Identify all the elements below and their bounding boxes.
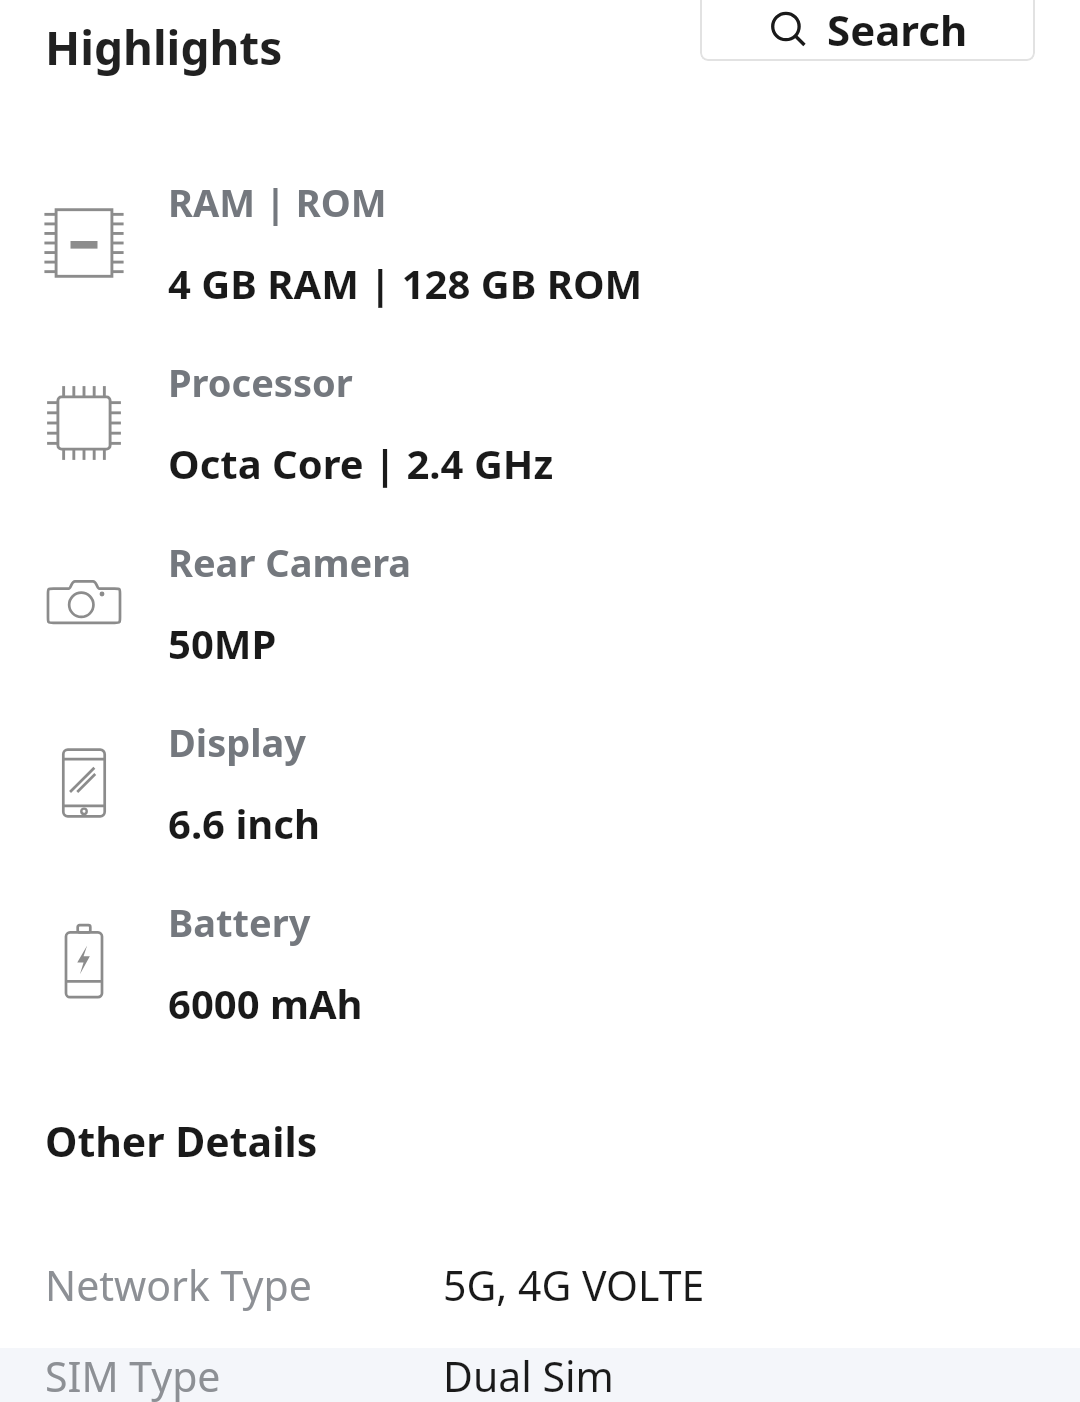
staticText: Octa Core | 2.4 GHz [168, 436, 554, 490]
button[interactable]: SIM Type [0, 1348, 1080, 1402]
staticText: Highlights [45, 16, 283, 79]
staticText: Battery [168, 896, 311, 948]
button[interactable]: Search [700, 0, 1035, 61]
button[interactable]: Battery [0, 873, 1080, 1053]
button[interactable]: Display [0, 693, 1080, 873]
staticText: Search [827, 1, 968, 58]
staticText: 6.6 inch [168, 796, 320, 850]
button[interactable]: Network Type [0, 1221, 1080, 1348]
button[interactable]: Rear Camera [0, 513, 1080, 693]
staticText: Network Type [45, 1257, 443, 1313]
staticText: 6000 mAh [168, 976, 363, 1030]
staticText: Processor [168, 356, 353, 408]
staticText: Rear Camera [168, 536, 412, 588]
staticText: Other Details [45, 1113, 318, 1169]
staticText: 50MP [168, 616, 277, 670]
button[interactable]: RAM | ROM [0, 153, 1080, 333]
staticText: SIM Type [45, 1348, 443, 1402]
staticText: Display [168, 716, 307, 768]
staticText: Dual Sim [443, 1348, 614, 1402]
staticText: RAM | ROM [168, 176, 387, 228]
button[interactable]: Processor [0, 333, 1080, 513]
staticText: 4 GB RAM | 128 GB ROM [168, 256, 643, 310]
staticText: 5G, 4G VOLTE [443, 1257, 705, 1313]
